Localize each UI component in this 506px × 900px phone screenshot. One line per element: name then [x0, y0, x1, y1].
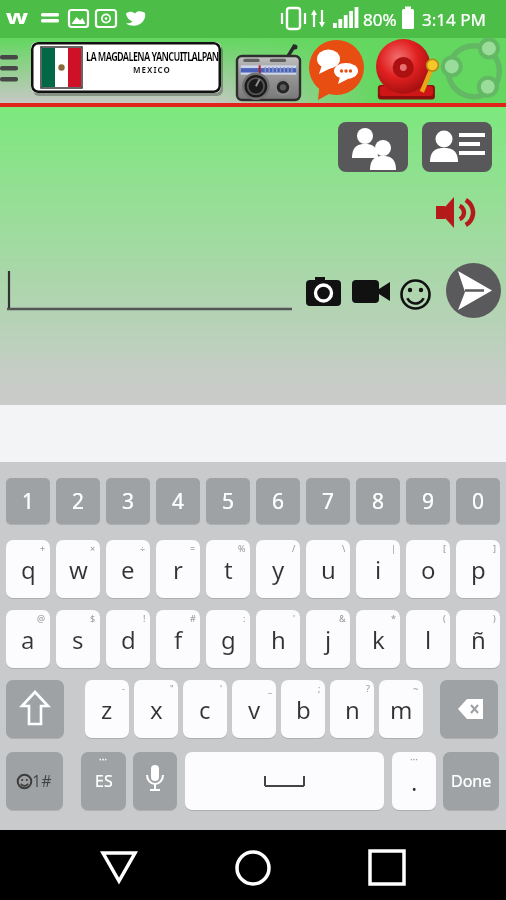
- button[interactable]: y: [256, 540, 300, 598]
- button[interactable]: 3: [106, 478, 150, 524]
- button[interactable]: [185, 752, 384, 810]
- staticText: m: [390, 693, 413, 726]
- button[interactable]: ES: [81, 752, 126, 810]
- staticText: Done: [451, 770, 492, 792]
- button[interactable]: 2: [56, 478, 100, 524]
- staticText: w: [69, 553, 88, 586]
- button[interactable]: m: [379, 680, 423, 738]
- staticText: &: [339, 612, 346, 624]
- staticText: 6: [272, 487, 285, 516]
- button[interactable]: [422, 122, 492, 172]
- staticText: ?: [366, 682, 370, 694]
- button[interactable]: Done: [443, 752, 499, 810]
- button[interactable]: l: [406, 610, 450, 668]
- button[interactable]: [358, 835, 418, 895]
- staticText: *: [391, 612, 396, 624]
- button[interactable]: [222, 835, 282, 895]
- button[interactable]: 1#: [6, 752, 63, 810]
- staticText: 80%: [363, 8, 397, 31]
- staticText: ES: [95, 770, 113, 792]
- button[interactable]: d: [106, 610, 150, 668]
- button[interactable]: z: [85, 680, 129, 738]
- button[interactable]: [6, 680, 64, 738]
- button[interactable]: 5: [206, 478, 250, 524]
- button[interactable]: [352, 280, 390, 303]
- button[interactable]: [436, 197, 470, 228]
- button[interactable]: [446, 263, 501, 318]
- button[interactable]: o: [406, 540, 450, 598]
- staticText: 7: [322, 487, 335, 516]
- staticText: ···: [99, 752, 108, 766]
- button[interactable]: f: [156, 610, 200, 668]
- staticText: |: [391, 542, 396, 554]
- button[interactable]: t: [206, 540, 250, 598]
- button[interactable]: 0: [456, 478, 500, 524]
- button[interactable]: j: [306, 610, 350, 668]
- button[interactable]: 1: [6, 478, 50, 524]
- staticText: ÷: [140, 542, 146, 554]
- button[interactable]: e: [106, 540, 150, 598]
- staticText: %: [238, 542, 246, 554]
- staticText: 9: [422, 487, 435, 516]
- button[interactable]: b: [281, 680, 325, 738]
- staticText: ···: [410, 752, 419, 766]
- staticText: =: [190, 542, 196, 554]
- staticText: 3:14 PM: [422, 8, 486, 31]
- staticText: p: [471, 553, 486, 586]
- button[interactable]: [376, 42, 438, 100]
- button[interactable]: h: [256, 610, 300, 668]
- button[interactable]: [338, 122, 408, 172]
- button[interactable]: [440, 680, 498, 738]
- staticText: z: [101, 693, 113, 726]
- button[interactable]: u: [306, 540, 350, 598]
- staticText: !: [143, 612, 146, 624]
- button[interactable]: ñ: [456, 610, 500, 668]
- staticText: 1#: [32, 770, 52, 792]
- staticText: [: [443, 542, 446, 554]
- button[interactable]: 7: [306, 478, 350, 524]
- button[interactable]: 8: [356, 478, 400, 524]
- button[interactable]: [90, 835, 150, 895]
- button[interactable]: [446, 40, 504, 100]
- staticText: x: [150, 693, 163, 726]
- button[interactable]: x: [134, 680, 178, 738]
- button[interactable]: k: [356, 610, 400, 668]
- staticText: 1: [22, 487, 35, 516]
- button[interactable]: i: [356, 540, 400, 598]
- staticText: u: [321, 553, 336, 586]
- button[interactable]: [306, 277, 341, 306]
- button[interactable]: 9: [406, 478, 450, 524]
- button[interactable]: a: [6, 610, 50, 668]
- button[interactable]: [133, 752, 177, 810]
- staticText: 4: [172, 487, 185, 516]
- staticText: /: [292, 542, 296, 554]
- button[interactable]: n: [330, 680, 374, 738]
- button[interactable]: .: [392, 752, 436, 810]
- button[interactable]: [400, 279, 431, 310]
- button[interactable]: q: [6, 540, 50, 598]
- staticText: d: [121, 623, 136, 656]
- button[interactable]: 6: [256, 478, 300, 524]
- button[interactable]: s: [56, 610, 100, 668]
- staticText: ": [170, 682, 174, 694]
- button[interactable]: c: [183, 680, 227, 738]
- staticText: y: [272, 553, 285, 586]
- button[interactable]: g: [206, 610, 250, 668]
- staticText: f: [174, 623, 183, 656]
- staticText: t: [224, 553, 233, 586]
- button[interactable]: p: [456, 540, 500, 598]
- staticText: ': [220, 682, 223, 694]
- staticText: ×: [90, 542, 96, 554]
- staticText: q: [21, 553, 36, 586]
- staticText: 3: [122, 487, 135, 516]
- staticText: ñ: [471, 623, 486, 656]
- button[interactable]: [312, 43, 364, 97]
- button[interactable]: [237, 45, 300, 100]
- button[interactable]: LA MAGDALENA YANCUITLALPAN: [31, 42, 221, 93]
- button[interactable]: w: [56, 540, 100, 598]
- button[interactable]: v: [232, 680, 276, 738]
- staticText: ;: [318, 682, 321, 694]
- button[interactable]: 4: [156, 478, 200, 524]
- button[interactable]: r: [156, 540, 200, 598]
- staticText: \: [342, 542, 346, 554]
